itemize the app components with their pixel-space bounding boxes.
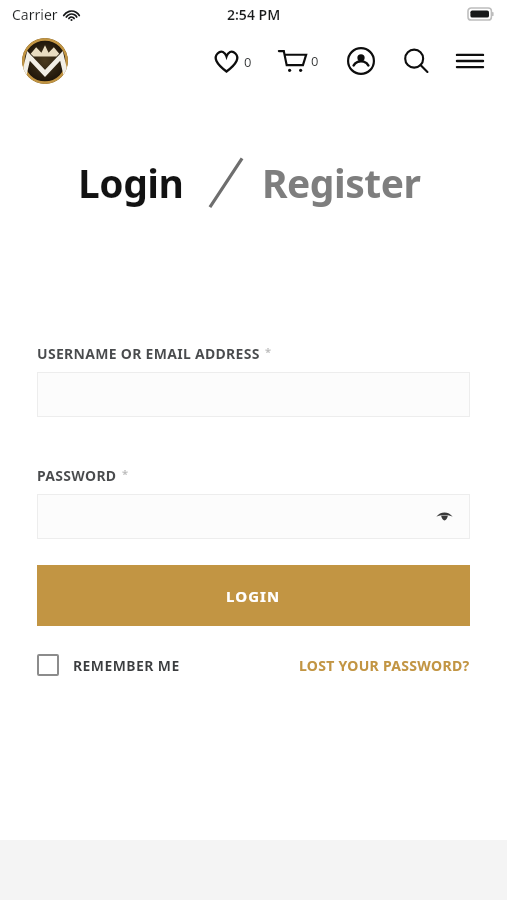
staticText: 2:54 PM bbox=[227, 5, 281, 24]
staticText: REMEMBER ME bbox=[73, 656, 180, 675]
staticText: Carrier bbox=[12, 5, 58, 24]
button[interactable]: REMEMBER ME bbox=[37, 654, 180, 676]
button[interactable]: Menu bbox=[453, 48, 487, 74]
staticText: LOST YOUR PASSWORD? bbox=[299, 656, 470, 675]
staticText: Login bbox=[78, 156, 184, 209]
staticText: 0 bbox=[244, 53, 252, 71]
button[interactable]: Show password bbox=[433, 508, 456, 525]
button[interactable]: Wishlist bbox=[211, 43, 254, 80]
staticText: * bbox=[122, 466, 129, 481]
staticText: Register bbox=[262, 156, 421, 209]
button[interactable]: Account bbox=[343, 43, 379, 79]
button[interactable]: Login bbox=[78, 156, 184, 209]
button[interactable]: Home bbox=[22, 38, 68, 84]
button[interactable]: Show password bbox=[37, 494, 470, 539]
button[interactable]: Register bbox=[262, 156, 421, 209]
button[interactable]: LOST YOUR PASSWORD? bbox=[299, 656, 470, 675]
staticText: 0 bbox=[311, 52, 319, 70]
button[interactable]: LOGIN bbox=[37, 565, 470, 626]
button[interactable]: Search bbox=[399, 44, 433, 78]
staticText: * bbox=[265, 344, 272, 359]
staticText: LOGIN bbox=[226, 586, 281, 606]
staticText: USERNAME OR EMAIL ADDRESS bbox=[37, 344, 260, 363]
staticText: PASSWORD bbox=[37, 466, 117, 485]
button[interactable]: Cart bbox=[276, 42, 321, 80]
button[interactable] bbox=[37, 372, 470, 417]
